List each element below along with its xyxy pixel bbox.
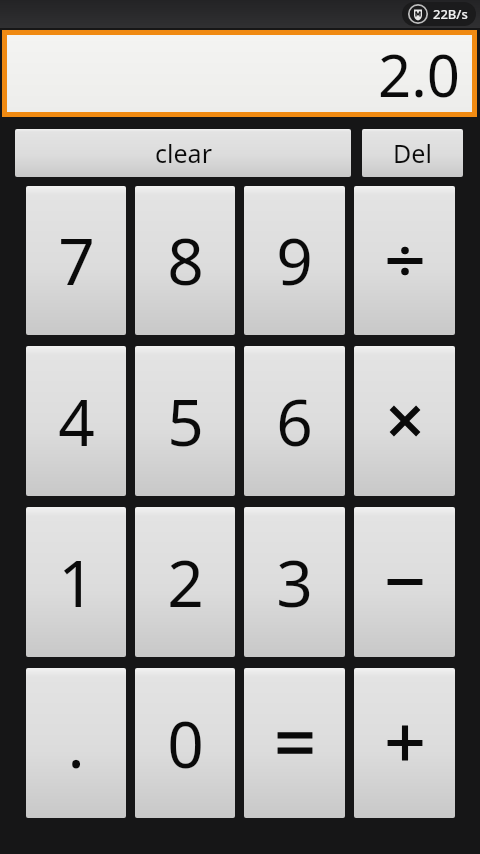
staticText: 22B/s — [433, 5, 468, 23]
staticText: 0 — [167, 700, 204, 787]
button[interactable]: 4 — [26, 346, 126, 496]
staticText: 1 — [58, 539, 95, 626]
button[interactable]: Subtract — [354, 507, 455, 657]
button[interactable]: 7 — [26, 186, 126, 335]
staticText: 7 — [58, 217, 95, 304]
staticText: 9 — [276, 217, 313, 304]
staticText: 3 — [276, 539, 313, 626]
other: Security shield — [408, 4, 428, 24]
button[interactable]: Multiply — [354, 346, 455, 496]
staticText: Del — [393, 136, 432, 170]
staticText: 5 — [167, 378, 204, 465]
staticText: 6 — [276, 378, 313, 465]
button[interactable]: 1 — [26, 507, 126, 657]
button[interactable]: . — [26, 668, 126, 818]
button[interactable]: 3 — [244, 507, 345, 657]
button[interactable]: Del — [362, 129, 463, 177]
staticText: 4 — [58, 378, 95, 465]
button[interactable]: 5 — [135, 346, 235, 496]
staticText: clear — [155, 136, 212, 170]
button[interactable]: 8 — [135, 186, 235, 335]
button[interactable]: 9 — [244, 186, 345, 335]
button[interactable]: 6 — [244, 346, 345, 496]
button[interactable]: Equals — [244, 668, 345, 818]
button[interactable]: Divide — [354, 186, 455, 335]
button[interactable]: clear — [15, 129, 351, 177]
staticText: 2.0 — [378, 35, 460, 112]
button[interactable]: 0 — [135, 668, 235, 818]
staticText: . — [67, 700, 85, 787]
staticText: 8 — [167, 217, 204, 304]
button[interactable]: 2 — [135, 507, 235, 657]
button[interactable]: 2.0 — [7, 35, 472, 112]
staticText: 2 — [167, 539, 204, 626]
button[interactable]: Add — [354, 668, 455, 818]
